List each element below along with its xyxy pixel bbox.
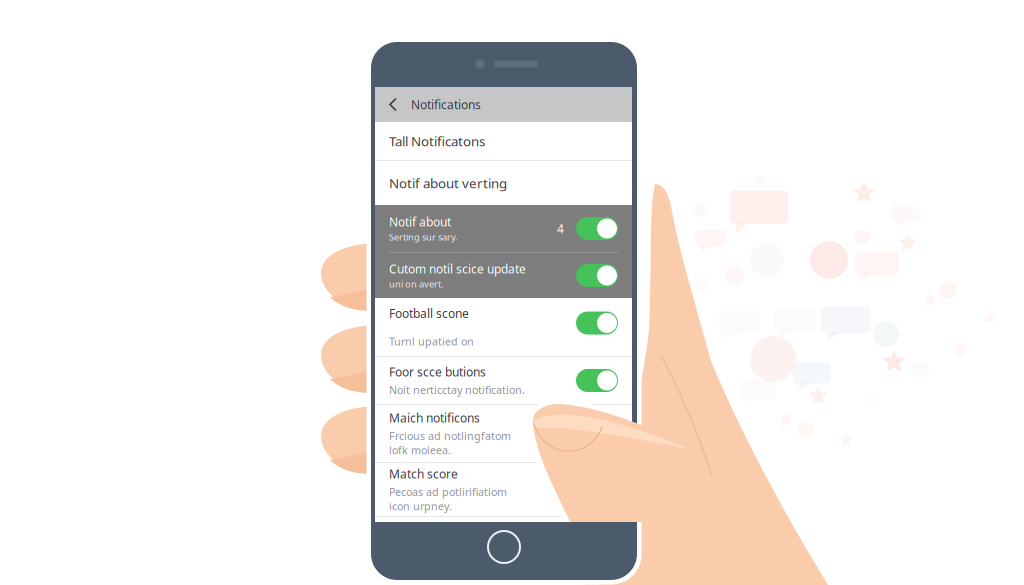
staticText: Serting sur sary.	[389, 231, 458, 243]
button[interactable]: Tall Notificatons	[375, 122, 632, 160]
staticText: Match score	[389, 466, 458, 482]
button[interactable]: Maich notificons	[375, 405, 632, 462]
staticText: Frcious ad notlingfatom lofk moleea.	[389, 429, 511, 457]
button[interactable]: Match score	[375, 463, 632, 516]
staticText: Notif about verting	[389, 174, 507, 192]
staticText: Notifications	[411, 96, 481, 112]
staticText: Pecoas ad potlirifiatiom icon urpney.	[389, 485, 507, 513]
button[interactable]: Football scone	[375, 298, 632, 356]
staticText: uni on avert.	[389, 278, 444, 290]
button[interactable]: Notif about	[375, 205, 632, 252]
staticText: Noit nerticctay notification.	[389, 383, 525, 397]
button[interactable]: Cutom notil scice update	[375, 253, 632, 298]
staticText: Cutom notil scice update	[389, 261, 526, 277]
staticText: Tall Notificatons	[389, 132, 485, 150]
staticText: Football scone	[389, 305, 469, 321]
staticText: Turnl upatied on	[389, 334, 474, 349]
button[interactable]: Notif about verting	[375, 161, 632, 205]
staticText: Maich notificons	[389, 410, 480, 426]
staticText: Notif about	[389, 214, 451, 230]
button[interactable]: Back	[385, 87, 411, 121]
staticText: 4	[557, 220, 564, 236]
button[interactable]: Foor scce butions	[375, 357, 632, 404]
staticText: Foor scce butions	[389, 364, 486, 380]
